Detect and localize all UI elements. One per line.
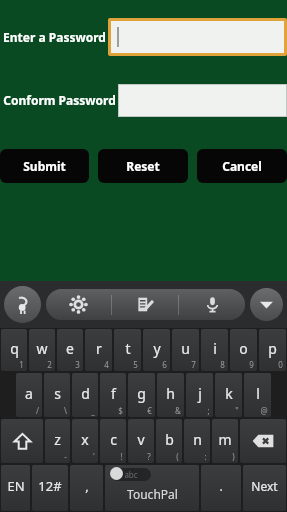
button[interactable]: k (215, 373, 242, 417)
staticText: & (175, 405, 181, 416)
staticText: Reset (126, 158, 160, 174)
button[interactable]: x (72, 419, 98, 463)
button[interactable]: j (186, 373, 213, 417)
staticText: ? (147, 451, 151, 462)
staticText: u (181, 339, 190, 358)
staticText: l (256, 384, 260, 403)
staticText: - (64, 451, 67, 462)
staticText: x (81, 430, 89, 449)
button[interactable]: q (1, 329, 27, 371)
staticText: j (198, 384, 202, 403)
staticText: 4 (104, 359, 109, 370)
staticText: 12# (38, 477, 62, 495)
staticText: o (239, 339, 248, 358)
button[interactable]: g (128, 373, 155, 417)
button[interactable]: Reset (98, 149, 188, 183)
staticText: s (54, 384, 61, 403)
button[interactable]: t (114, 329, 141, 371)
button[interactable]: Cancel (197, 149, 287, 183)
staticText: y (153, 339, 161, 358)
staticText: 2 (47, 359, 52, 370)
staticText: ( (176, 451, 179, 462)
staticText: z (54, 430, 61, 449)
button[interactable]: o (230, 329, 257, 371)
button[interactable]: Submit (0, 149, 89, 183)
button[interactable]: f (100, 373, 126, 417)
button[interactable]: Hide keyboard (250, 288, 283, 321)
staticText: 7 (191, 359, 196, 370)
button[interactable]: y (143, 329, 170, 371)
staticText: 3 (75, 359, 80, 370)
staticText: k (225, 384, 233, 403)
staticText: " (235, 405, 239, 416)
staticText: r (96, 339, 102, 358)
button[interactable]: Touch input (4, 286, 41, 323)
button[interactable] (111, 21, 284, 53)
staticText: / (36, 405, 39, 416)
staticText: ' (93, 451, 95, 462)
staticText: c (110, 430, 117, 449)
staticText: TouchPal (127, 486, 178, 502)
button[interactable]: i (201, 329, 228, 371)
button[interactable]: b (156, 419, 182, 463)
staticText: Submit (23, 158, 66, 174)
staticText: Conform Password (3, 92, 116, 108)
button[interactable]: w (29, 329, 55, 371)
staticText: € (147, 405, 152, 416)
staticText: ! (120, 451, 123, 462)
staticText: h (166, 384, 175, 403)
staticText: 0 (278, 359, 283, 370)
button[interactable]: a (16, 373, 42, 417)
button[interactable]: Backspace (240, 419, 286, 463)
button[interactable]: Settings (46, 289, 111, 320)
button[interactable]: r (85, 329, 112, 371)
button[interactable]: m (212, 419, 238, 463)
button[interactable]: Next (243, 465, 286, 511)
staticText: q (10, 339, 19, 358)
button[interactable]: l (244, 373, 271, 417)
button[interactable]: 12# (32, 465, 68, 511)
staticText: g (137, 384, 146, 403)
staticText: _ (91, 405, 95, 416)
staticText: 1 (19, 359, 24, 370)
button[interactable]: v (128, 419, 154, 463)
button[interactable]: , (70, 465, 103, 511)
button[interactable]: Voice input (179, 289, 245, 320)
button[interactable]: e (57, 329, 83, 371)
button[interactable]: Shift (1, 419, 43, 463)
button[interactable]: u (172, 329, 199, 371)
staticText: 5 (133, 359, 138, 370)
other: Shift (1, 419, 43, 463)
button[interactable]: Edit (112, 289, 178, 320)
staticText: ; (207, 405, 210, 416)
staticText: Next (251, 478, 278, 494)
button[interactable]: EN (1, 465, 30, 511)
button[interactable]: s (44, 373, 70, 417)
staticText: v (137, 430, 145, 449)
staticText: m (218, 430, 232, 449)
staticText: i (213, 339, 217, 358)
staticText: 6 (162, 359, 167, 370)
staticText: 9 (249, 359, 254, 370)
staticText: a (25, 384, 33, 403)
staticText: b (165, 430, 174, 449)
button[interactable]: Space (105, 465, 199, 511)
button[interactable] (118, 84, 287, 117)
staticText: : (204, 451, 207, 462)
button[interactable]: n (184, 419, 210, 463)
staticText: f (111, 384, 116, 403)
button[interactable]: z (45, 419, 70, 463)
staticText: e (66, 339, 74, 358)
button[interactable]: d (72, 373, 98, 417)
staticText: t (125, 339, 131, 358)
button[interactable]: p (259, 329, 286, 371)
button[interactable]: h (157, 373, 184, 417)
staticText: d (81, 384, 90, 403)
staticText: EN (7, 477, 25, 495)
staticText: , (85, 477, 89, 495)
staticText: ) (232, 451, 235, 462)
button[interactable]: c (100, 419, 126, 463)
staticText: \ (64, 405, 67, 416)
button[interactable]: . (201, 465, 241, 511)
staticText: Enter a Password (3, 29, 106, 45)
